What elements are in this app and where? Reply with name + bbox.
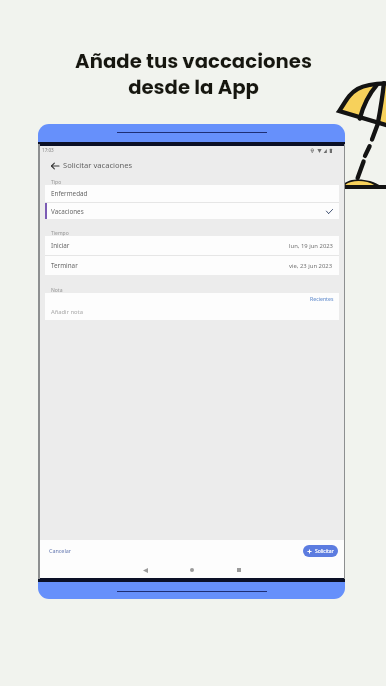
button[interactable]: Back	[46, 157, 64, 175]
staticText: Solicitar vacaciones	[63, 160, 133, 170]
staticText: lun, 19 jun 2023	[289, 242, 333, 250]
staticText: 17:03	[42, 147, 54, 153]
button[interactable]: Recientes	[310, 295, 334, 302]
button[interactable]: Vacaciones	[45, 203, 339, 219]
button[interactable]: Back	[138, 563, 152, 577]
button[interactable]: Cancelar	[46, 544, 75, 557]
staticText: Nota	[51, 287, 63, 294]
staticText: Vacaciones	[51, 207, 84, 216]
staticText: Terminar	[51, 261, 78, 270]
staticText: Recientes	[310, 295, 334, 302]
staticText: vie, 23 jun 2023	[289, 262, 333, 270]
button[interactable]: Recents	[232, 563, 246, 577]
staticText: Solicitar	[315, 548, 334, 555]
staticText: Iniciar	[51, 241, 70, 250]
staticText: Añade tus vaccaciones desde la App	[75, 47, 312, 101]
staticText: Enfermedad	[51, 189, 88, 198]
staticText: Tiempo	[51, 230, 69, 237]
button[interactable]: Home	[185, 563, 199, 577]
staticText: Añadir nota	[51, 308, 83, 316]
button[interactable]: Enfermedad	[45, 185, 339, 202]
staticText: Tipo	[51, 179, 62, 186]
button[interactable]: Iniciar	[45, 236, 339, 255]
button[interactable]: Solicitar	[303, 545, 338, 557]
button[interactable]: Terminar	[45, 256, 339, 275]
staticText: Cancelar	[49, 547, 72, 554]
